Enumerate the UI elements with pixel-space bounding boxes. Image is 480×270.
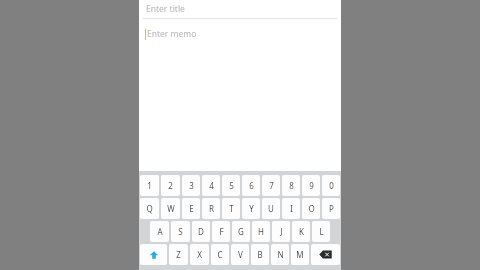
button[interactable]: T <box>222 198 240 219</box>
button[interactable]: 6 <box>242 175 260 196</box>
staticText: E <box>189 203 194 214</box>
button[interactable]: Shift <box>140 244 167 265</box>
button[interactable]: V <box>231 244 249 265</box>
button[interactable]: L <box>312 221 330 242</box>
button[interactable]: 7 <box>262 175 280 196</box>
button[interactable]: Q <box>140 198 159 219</box>
button[interactable]: 8 <box>282 175 300 196</box>
button[interactable]: F <box>212 221 230 242</box>
staticText: K <box>299 226 304 237</box>
staticText: X <box>197 249 202 260</box>
button[interactable]: 4 <box>202 175 220 196</box>
staticText: U <box>268 203 274 214</box>
button[interactable]: M <box>291 244 309 265</box>
staticText: P <box>329 203 334 214</box>
button[interactable]: B <box>251 244 269 265</box>
button[interactable]: 3 <box>182 175 200 196</box>
button[interactable]: 1 <box>140 175 159 196</box>
button[interactable]: H <box>252 221 270 242</box>
button[interactable]: X <box>190 244 209 265</box>
staticText: C <box>217 249 223 260</box>
button[interactable]: A <box>150 221 169 242</box>
staticText: 9 <box>309 180 314 191</box>
staticText: N <box>277 249 284 260</box>
staticText: 3 <box>189 180 194 191</box>
button[interactable]: 0 <box>322 175 340 196</box>
button[interactable]: U <box>262 198 280 219</box>
button[interactable]: 9 <box>302 175 320 196</box>
button[interactable]: 5 <box>222 175 240 196</box>
button[interactable]: J <box>272 221 290 242</box>
staticText: Y <box>249 203 254 214</box>
staticText: V <box>238 249 243 260</box>
button[interactable]: C <box>211 244 229 265</box>
button[interactable]: N <box>271 244 289 265</box>
staticText: J <box>280 226 283 237</box>
button[interactable]: G <box>232 221 250 242</box>
staticText: G <box>238 226 244 237</box>
button[interactable]: K <box>292 221 310 242</box>
staticText: M <box>296 249 304 260</box>
button[interactable]: D <box>192 221 210 242</box>
button[interactable]: S <box>171 221 190 242</box>
button[interactable]: W <box>161 198 180 219</box>
staticText: W <box>167 203 175 214</box>
button[interactable]: R <box>202 198 220 219</box>
staticText: L <box>319 226 324 237</box>
staticText: 8 <box>289 180 294 191</box>
staticText: 6 <box>249 180 254 191</box>
button[interactable]: Enter title <box>139 0 341 18</box>
staticText: Q <box>146 203 153 214</box>
staticText: 4 <box>209 180 214 191</box>
staticText: Enter memo <box>147 28 197 40</box>
button[interactable]: E <box>182 198 200 219</box>
staticText: Z <box>176 249 181 260</box>
staticText: I <box>290 203 293 214</box>
staticText: S <box>178 226 183 237</box>
button[interactable]: O <box>302 198 320 219</box>
button[interactable]: Y <box>242 198 260 219</box>
staticText: 0 <box>329 180 334 191</box>
staticText: R <box>209 203 214 214</box>
button[interactable]: Backspace <box>311 244 340 265</box>
staticText: 2 <box>168 180 173 191</box>
staticText: D <box>198 226 204 237</box>
staticText: 7 <box>269 180 274 191</box>
button[interactable]: Z <box>169 244 188 265</box>
staticText: H <box>258 226 264 237</box>
staticText: 5 <box>229 180 234 191</box>
button[interactable]: Enter memo <box>139 19 341 171</box>
staticText: 1 <box>147 180 152 191</box>
button[interactable]: P <box>322 198 340 219</box>
staticText: Enter title <box>146 3 185 15</box>
staticText: F <box>219 226 224 237</box>
staticText: B <box>257 249 263 260</box>
staticText: O <box>308 203 315 214</box>
staticText: A <box>157 226 163 237</box>
button[interactable]: I <box>282 198 300 219</box>
staticText: T <box>229 203 234 214</box>
button[interactable]: 2 <box>161 175 180 196</box>
